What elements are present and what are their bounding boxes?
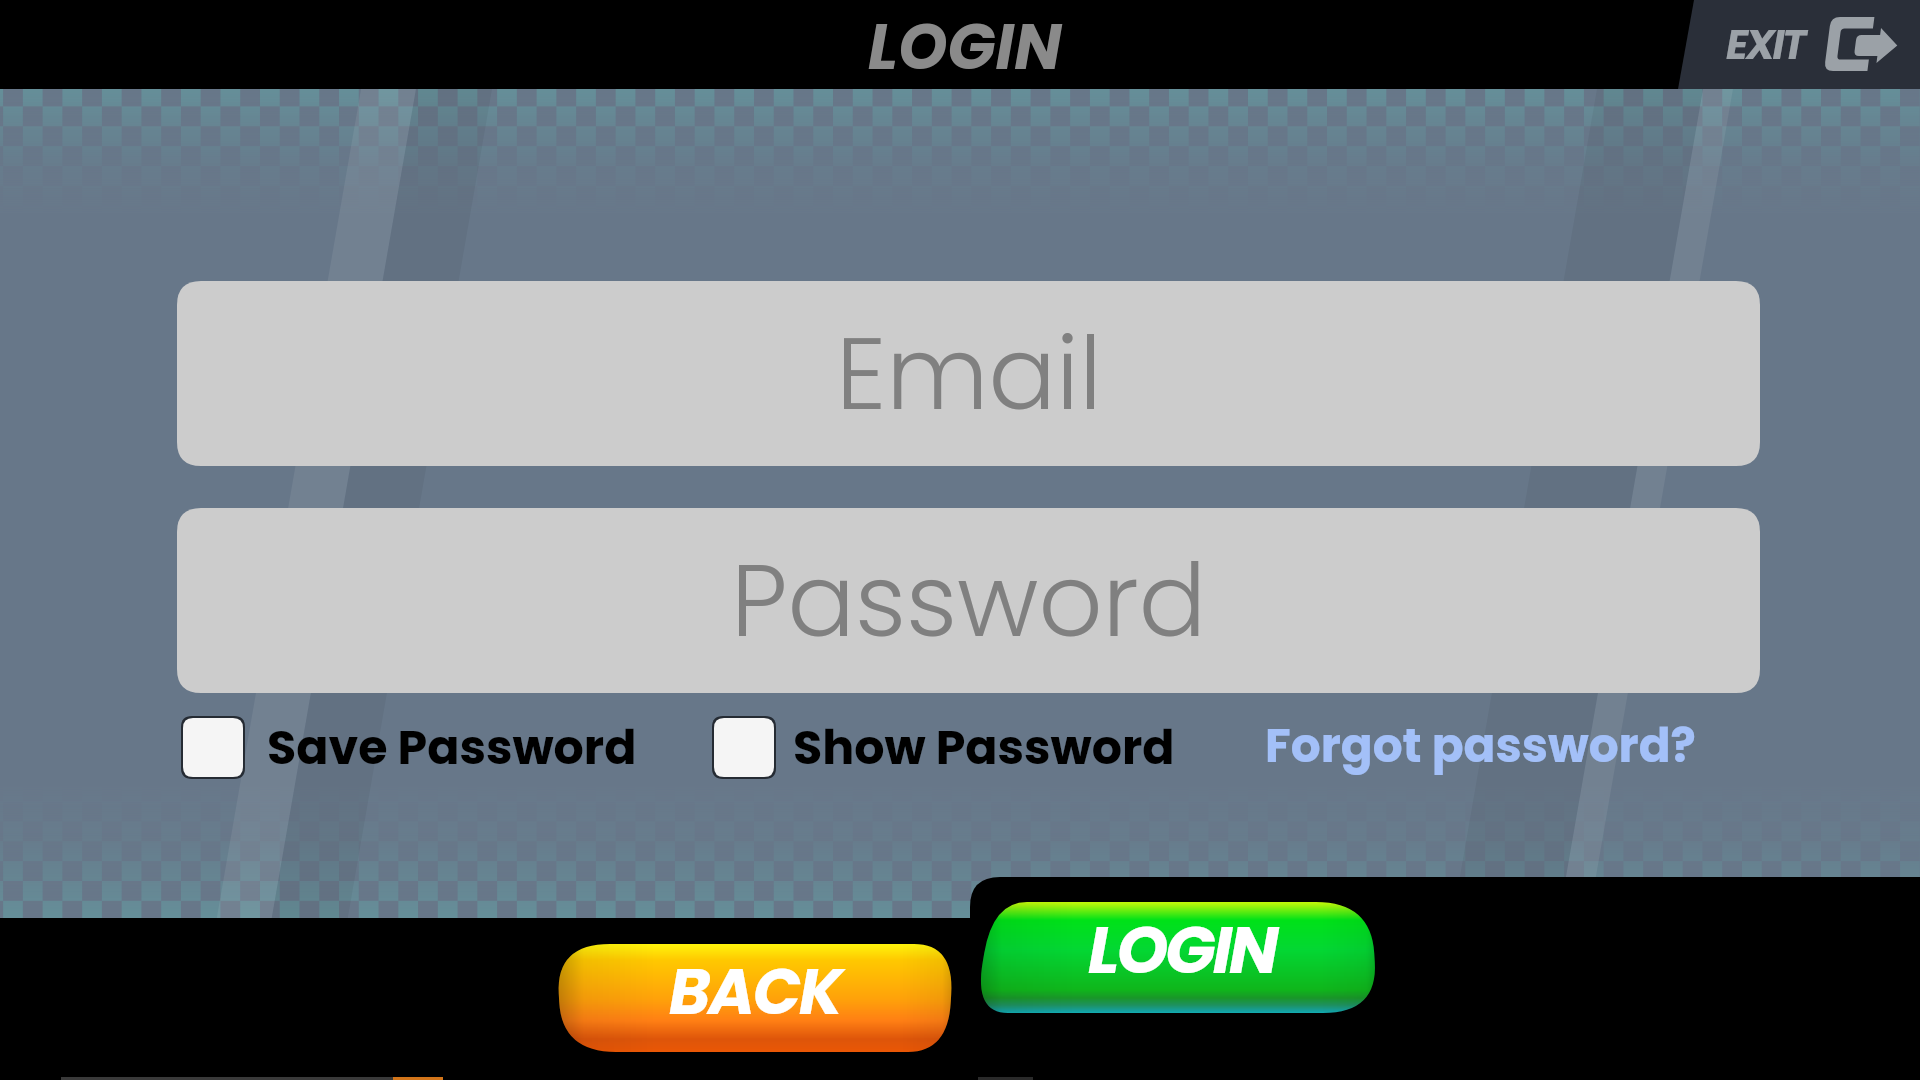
button[interactable]: BACK	[556, 944, 960, 1058]
button[interactable]: Email	[177, 281, 1760, 466]
button[interactable]: Save Password	[181, 716, 647, 780]
staticText: BACK	[669, 948, 841, 1036]
staticText: EXIT	[1726, 16, 1804, 73]
staticText: Password	[731, 531, 1207, 671]
staticText: Save Password	[267, 714, 637, 778]
button[interactable]: Exit	[1676, 0, 1920, 89]
staticText: Forgot password?	[1265, 713, 1696, 779]
staticText: LOGIN	[1088, 904, 1276, 996]
staticText: LOGIN	[868, 3, 1062, 91]
button[interactable]: LOGIN	[974, 902, 1384, 1019]
staticText: Email	[836, 304, 1102, 444]
button[interactable]: Password	[177, 508, 1760, 693]
button[interactable]: Forgot password?	[1265, 710, 1711, 782]
button[interactable]: Show Password	[712, 716, 1173, 780]
staticText: Show Password	[793, 714, 1175, 778]
